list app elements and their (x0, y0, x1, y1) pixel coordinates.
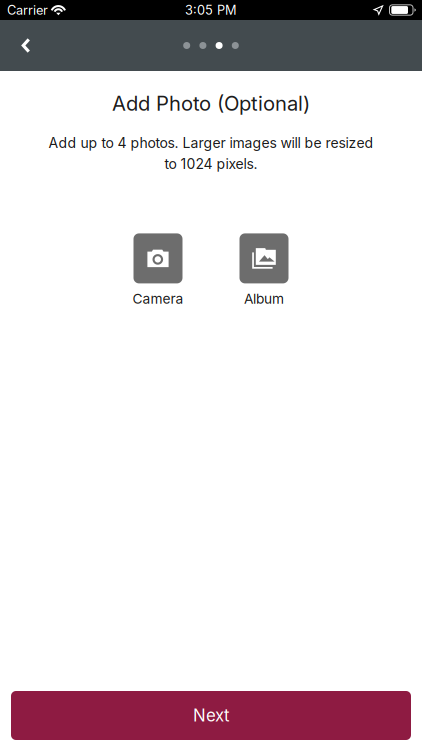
button[interactable]: Next (11, 691, 411, 740)
button[interactable]: Back (4, 23, 48, 67)
staticText: 3:05 PM (185, 2, 237, 18)
staticText: Add Photo (Optional) (112, 91, 310, 115)
button[interactable]: Camera (129, 233, 187, 307)
staticText: Camera (132, 290, 183, 307)
button[interactable]: Album (235, 233, 293, 307)
staticText: Carrier (7, 2, 48, 18)
staticText: Add up to 4 photos. Larger images will b… (48, 134, 373, 151)
staticText: Next (193, 705, 229, 726)
staticText: to 1024 pixels. (164, 155, 257, 172)
staticText: Album (244, 290, 284, 307)
